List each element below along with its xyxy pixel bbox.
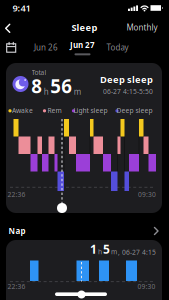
staticText: Jun 27 [70,40,95,50]
staticText: , 06-27 4:15 [118,248,156,256]
button[interactable]: Calendar [6,42,17,53]
staticText: 5 [103,241,110,257]
staticText: Sleep [71,21,97,34]
button[interactable]: Nap [8,226,159,236]
staticText: Nap [8,226,25,236]
staticText: 56 [50,74,72,98]
staticText: 09:30 [138,190,156,199]
staticText: Jun 26 [34,42,58,53]
staticText: 09:30 [137,282,155,291]
staticText: Deep sleep [100,73,153,85]
staticText: 22:36 [7,190,25,199]
staticText: Total [31,68,46,77]
staticText: 9:41 [12,2,30,14]
staticText: 22:36 [7,282,25,291]
staticText: h [44,86,49,97]
button[interactable]: Monthly [126,22,157,33]
staticText: Rem [47,106,61,115]
staticText: h [98,247,102,256]
staticText: Light sleep [73,106,107,115]
button[interactable]: Back [4,23,13,33]
staticText: 06-27 4:15-5:50 [103,87,153,96]
staticText: Awake [12,106,33,115]
button[interactable]: Jun 26 [34,42,58,53]
staticText: m [74,86,81,97]
staticText: 1 [90,241,97,257]
button[interactable]: Jun 27 [69,39,95,56]
staticText: Deep sleep [116,106,152,115]
staticText: 8 [31,74,42,98]
staticText: Monthly [126,22,157,33]
staticText: Today [106,42,128,53]
button[interactable]: Today [106,42,128,53]
staticText: m [111,247,117,256]
